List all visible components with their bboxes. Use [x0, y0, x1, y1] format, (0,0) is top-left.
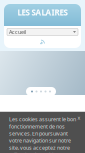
staticText: LES SALAIRES: [17, 7, 67, 18]
staticText: Les cookies assurent le bon fonctionneme…: [9, 116, 76, 153]
button[interactable]: Fermer: [76, 115, 82, 121]
staticText: Accueil: [9, 28, 26, 36]
staticText: x: [77, 114, 80, 121]
button[interactable]: Accueil: [7, 28, 78, 35]
